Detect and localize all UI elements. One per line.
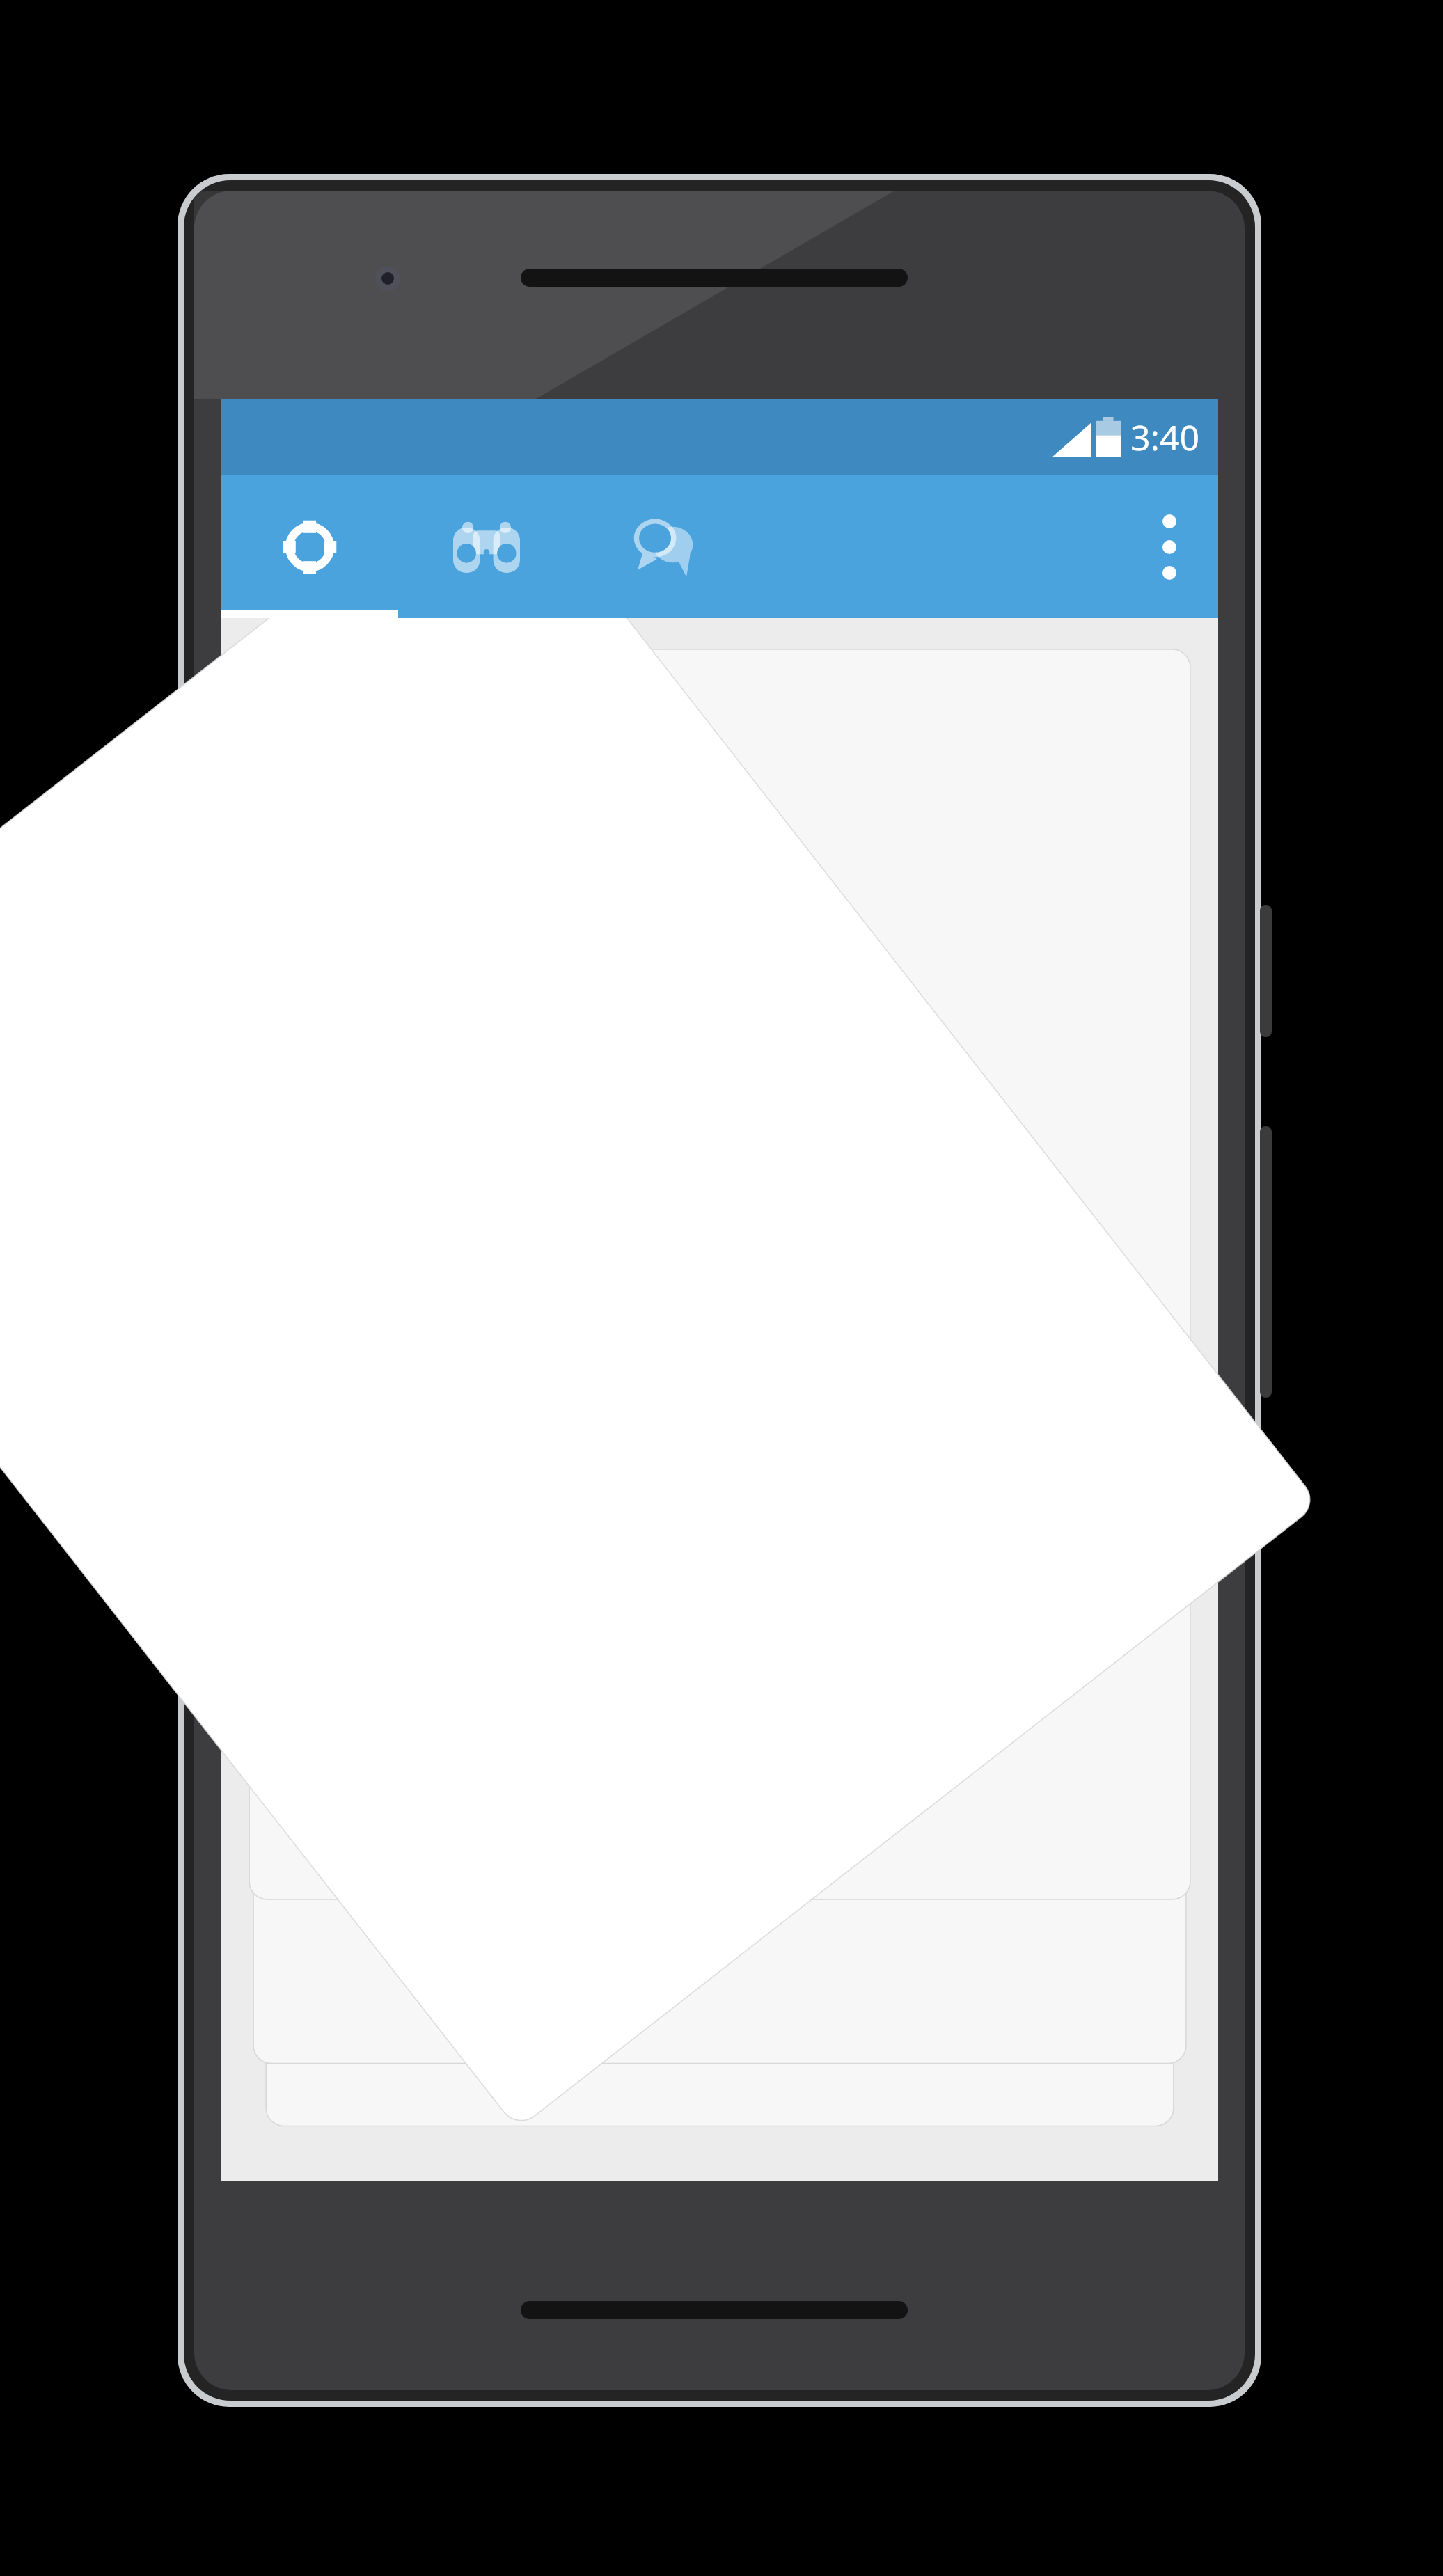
other: Chat <box>631 517 695 577</box>
button[interactable]: Scan <box>221 475 398 618</box>
button[interactable]: More options <box>1121 475 1218 618</box>
other: Discover <box>453 521 520 573</box>
button[interactable]: Discover <box>398 475 575 618</box>
other: Scan <box>280 517 340 577</box>
button[interactable]: Chat <box>575 475 752 618</box>
staticText: 3:40 <box>1130 413 1200 461</box>
